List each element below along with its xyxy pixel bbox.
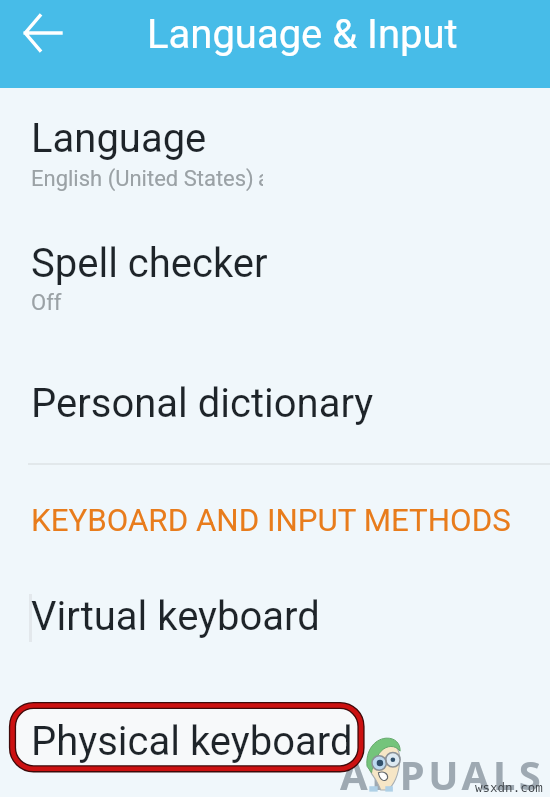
button[interactable]: Virtual keyboard: [0, 571, 550, 645]
staticText: Language & Input: [147, 11, 458, 58]
staticText: Language: [31, 115, 207, 162]
staticText: Personal dictionary: [31, 380, 374, 427]
staticText: APPUALS: [340, 747, 545, 797]
staticText: KEYBOARD AND INPUT METHODS: [31, 502, 511, 539]
staticText: English (United States): [31, 166, 254, 192]
staticText: wsxdn.com: [475, 780, 543, 795]
staticText: Physical keyboard: [31, 718, 353, 765]
staticText: Spell checker: [31, 240, 268, 287]
button[interactable]: KEYBOARD AND INPUT METHODS: [0, 502, 550, 544]
button[interactable]: Language: [0, 93, 550, 189]
button[interactable]: Spell checker: [0, 218, 550, 314]
staticText: Off: [31, 290, 62, 316]
staticText: Virtual keyboard: [31, 593, 320, 640]
staticText: a: [258, 166, 263, 188]
button[interactable]: Personal dictionary: [0, 358, 550, 432]
button[interactable]: Navigate up: [19, 9, 67, 57]
button[interactable]: Physical keyboard: [0, 696, 550, 770]
